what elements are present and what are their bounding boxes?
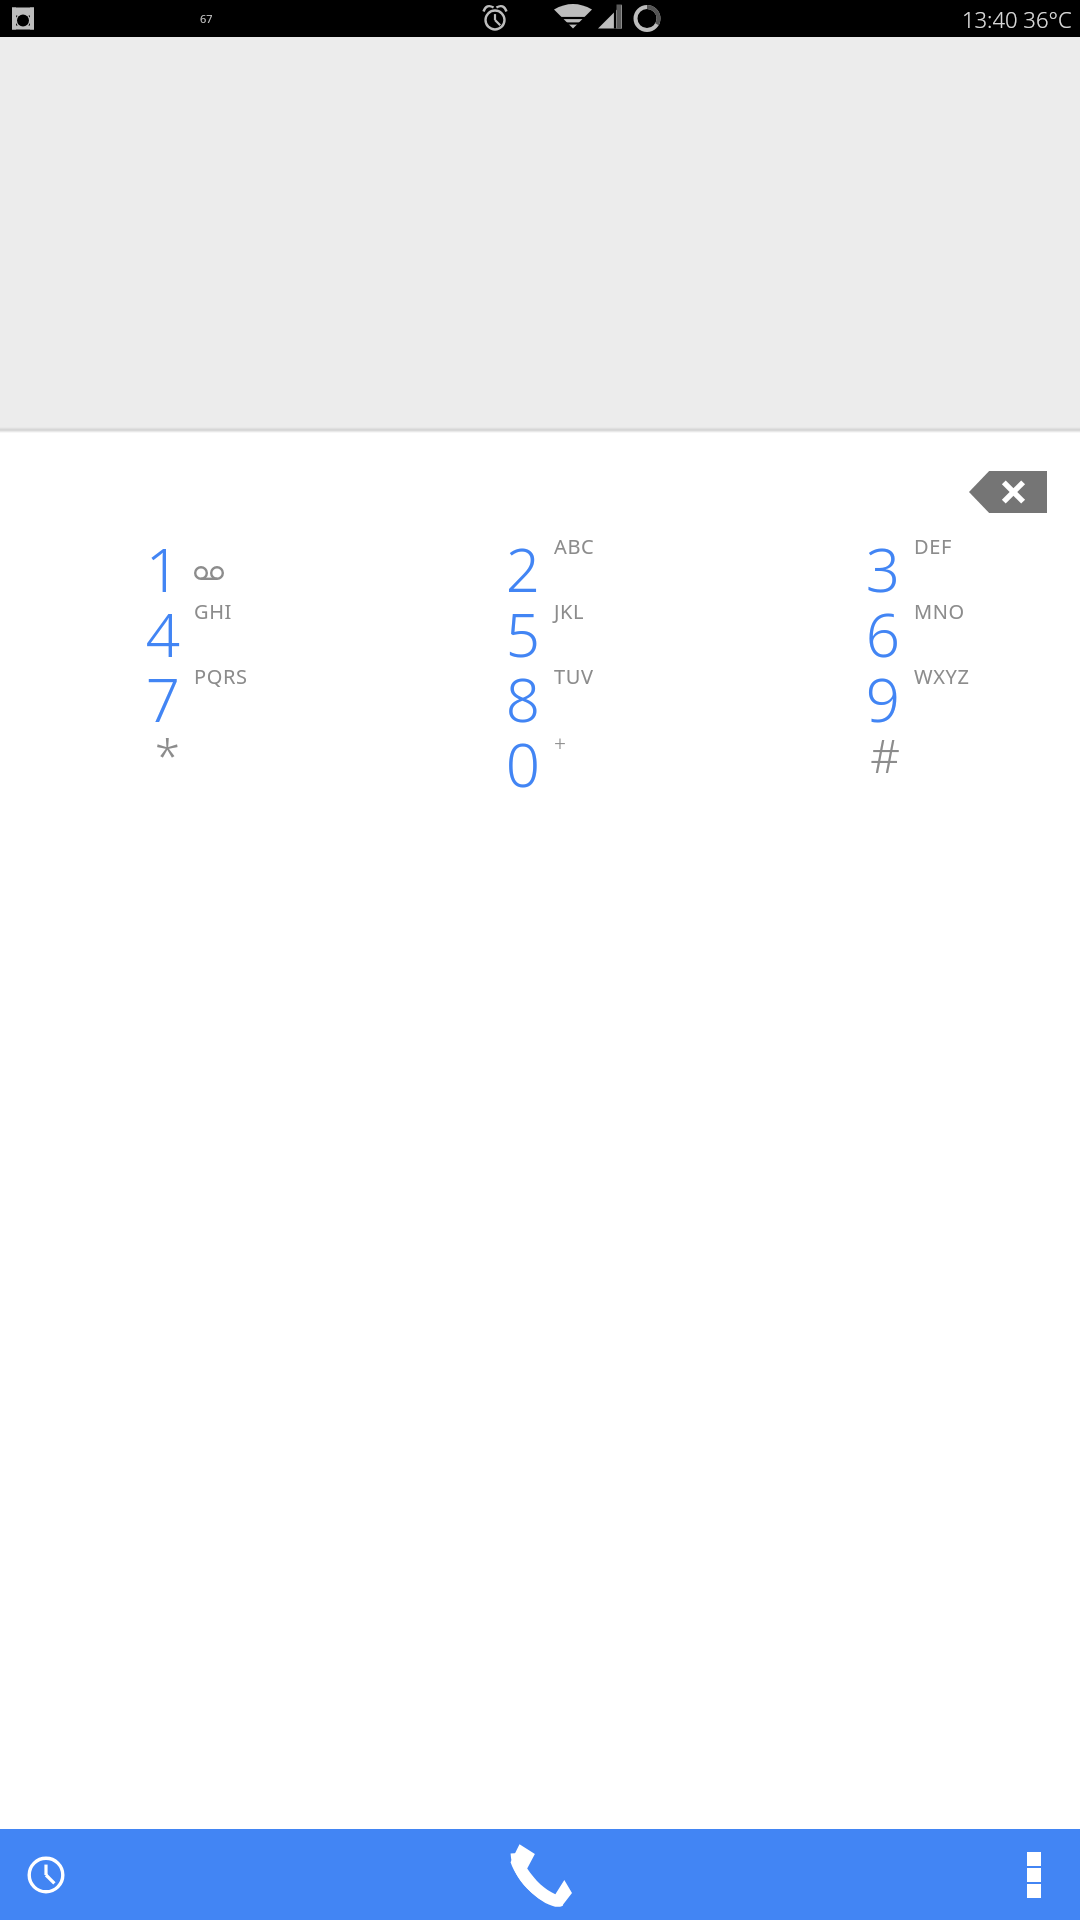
staticText: 4 — [145, 593, 180, 658]
button[interactable]: 6 — [720, 593, 1080, 658]
button[interactable]: # — [720, 723, 1080, 788]
staticText: DEF — [914, 533, 952, 560]
staticText: 5 — [505, 593, 540, 658]
staticText: 9 — [865, 658, 900, 723]
staticText: 1 — [145, 528, 180, 593]
staticText: 3 — [865, 528, 900, 593]
button[interactable]: 3 — [720, 528, 1080, 593]
staticText: JKL — [554, 598, 585, 625]
staticText: 7 — [145, 658, 180, 723]
button[interactable]: Recent calls — [8, 1837, 84, 1913]
staticText: 8 — [505, 658, 540, 723]
button[interactable]: 4 — [0, 593, 360, 658]
button[interactable]: More options — [998, 1839, 1070, 1911]
staticText: GHI — [194, 598, 232, 625]
staticText: MNO — [914, 598, 965, 625]
staticText: + — [554, 730, 566, 759]
button[interactable]: 8 — [360, 658, 720, 723]
button[interactable]: 5 — [360, 593, 720, 658]
button[interactable]: 0 — [360, 723, 720, 788]
button[interactable]: Backspace — [960, 465, 1056, 519]
staticText: # — [870, 724, 900, 787]
button[interactable]: 2 — [360, 528, 720, 593]
staticText: 0 — [505, 723, 540, 788]
staticText: PQRS — [194, 663, 248, 690]
staticText: 2 — [505, 528, 540, 593]
button[interactable]: 1 — [0, 528, 360, 593]
staticText: 6 — [865, 593, 900, 658]
staticText: * — [154, 724, 180, 787]
staticText: ABC — [554, 533, 595, 560]
button[interactable]: Call — [485, 1829, 595, 1920]
staticText: 67 — [200, 11, 213, 26]
staticText: WXYZ — [914, 663, 970, 690]
button[interactable]: * — [0, 723, 360, 788]
staticText: 13:40 36°C — [962, 4, 1072, 34]
button[interactable]: 7 — [0, 658, 360, 723]
button[interactable]: 9 — [720, 658, 1080, 723]
staticText: TUV — [554, 663, 594, 690]
